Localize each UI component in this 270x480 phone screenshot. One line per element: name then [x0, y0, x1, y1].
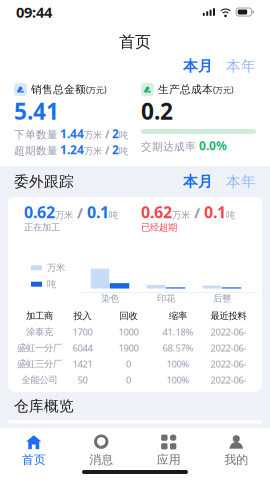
- staticText: 下单数量: [14, 128, 58, 141]
- staticText: 100%: [166, 358, 189, 370]
- staticText: 万米: [84, 129, 102, 141]
- staticText: 吨: [109, 209, 118, 221]
- staticText: 41.18%: [162, 326, 193, 338]
- staticText: 万米: [172, 209, 190, 221]
- staticText: 仓库概览: [14, 397, 74, 415]
- staticText: 6044: [72, 342, 92, 354]
- staticText: 首页: [119, 32, 151, 52]
- staticText: 万米: [55, 209, 73, 221]
- staticText: 消息: [89, 452, 113, 467]
- staticText: 我的: [224, 452, 248, 467]
- staticText: /: [102, 127, 112, 141]
- button[interactable]: 消息: [67, 427, 135, 467]
- staticText: /: [102, 143, 112, 157]
- staticText: 委外跟踪: [14, 172, 74, 190]
- staticText: 1.44: [60, 125, 84, 141]
- button[interactable]: 本月: [183, 172, 213, 190]
- staticText: 本年: [226, 172, 256, 190]
- staticText: 本月: [183, 172, 213, 190]
- staticText: (万元): [213, 85, 233, 95]
- staticText: 0.1: [204, 201, 226, 223]
- staticText: 盛虹三分厂: [17, 358, 62, 370]
- button[interactable]: 应用: [135, 427, 202, 467]
- button[interactable]: 本年: [226, 172, 256, 190]
- staticText: 2022-06-: [210, 358, 246, 370]
- staticText: 0.0%: [199, 137, 227, 153]
- staticText: 交期达成率: [141, 140, 196, 153]
- staticText: 最近投料: [210, 310, 246, 322]
- staticText: 染色: [101, 292, 119, 304]
- staticText: 全能公司: [21, 374, 57, 386]
- staticText: 加工商: [26, 310, 53, 322]
- staticText: 100%: [166, 374, 189, 386]
- staticText: 回收: [119, 310, 137, 322]
- staticText: 50: [77, 374, 87, 386]
- staticText: 09:44: [16, 2, 52, 22]
- staticText: 印花: [157, 292, 175, 304]
- staticText: 本年: [226, 57, 256, 75]
- staticText: 1000: [118, 326, 138, 338]
- staticText: 后整: [213, 292, 231, 304]
- staticText: 0: [126, 358, 131, 370]
- button[interactable]: 首页: [0, 427, 67, 467]
- staticText: 2: [112, 141, 119, 157]
- staticText: 0.2: [141, 96, 173, 126]
- staticText: 销售总金额: [31, 83, 86, 96]
- button[interactable]: 本年: [226, 57, 256, 75]
- staticText: /: [73, 203, 87, 222]
- staticText: 吨: [226, 209, 235, 221]
- staticText: 万米: [47, 262, 65, 273]
- staticText: 1900: [118, 342, 138, 354]
- staticText: 吨: [119, 129, 128, 141]
- staticText: (万元): [86, 85, 106, 95]
- staticText: 已经超期: [141, 222, 177, 233]
- staticText: 生产总成本: [158, 83, 213, 96]
- staticText: 2: [112, 125, 119, 141]
- staticText: 1.24: [60, 141, 84, 157]
- staticText: 本月: [183, 57, 213, 75]
- staticText: 正在加工: [24, 222, 60, 233]
- staticText: /: [190, 203, 204, 222]
- staticText: 5.41: [14, 96, 59, 126]
- staticText: 0: [126, 374, 131, 386]
- staticText: 缩率: [169, 310, 187, 322]
- staticText: 盛虹一分厂: [17, 342, 62, 354]
- staticText: 1700: [72, 326, 92, 338]
- staticText: 2022-06-: [210, 374, 246, 386]
- staticText: 2022-06-: [210, 342, 246, 354]
- staticText: 2022-06-: [210, 326, 246, 338]
- staticText: 吨: [119, 145, 128, 157]
- staticText: 0.62: [141, 201, 172, 223]
- staticText: 涂泰克: [26, 326, 53, 338]
- staticText: 68.57%: [162, 342, 193, 354]
- button[interactable]: 我的: [202, 427, 270, 467]
- button[interactable]: 本月: [183, 57, 213, 75]
- staticText: 1421: [72, 358, 92, 370]
- staticText: 超期数量: [14, 144, 58, 157]
- staticText: 投入: [73, 310, 91, 322]
- staticText: 万米: [84, 145, 102, 157]
- staticText: 首页: [22, 452, 46, 467]
- staticText: 吨: [47, 278, 56, 290]
- staticText: 0.1: [87, 201, 109, 223]
- staticText: 0.62: [24, 201, 55, 223]
- staticText: 应用: [157, 452, 181, 467]
